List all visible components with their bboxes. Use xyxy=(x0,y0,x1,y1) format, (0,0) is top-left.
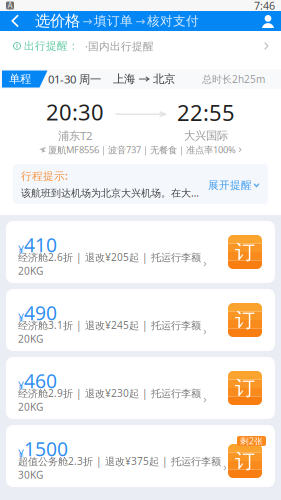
button[interactable]: ¥ xyxy=(6,425,275,487)
staticText: 核对支付 xyxy=(147,13,199,29)
staticText: 01-30 周一 xyxy=(48,71,101,87)
staticText: ¥ xyxy=(18,310,24,324)
staticText: 出行提醒： xyxy=(21,39,79,53)
staticText: 490 xyxy=(24,300,57,326)
staticText: → xyxy=(135,14,145,28)
staticText: 410 xyxy=(24,232,57,258)
staticText: 单程 xyxy=(9,72,31,86)
button[interactable]: ¥ xyxy=(6,357,275,419)
button[interactable]: 出行提醒： xyxy=(0,31,281,69)
staticText: 22:55 xyxy=(177,97,235,127)
staticText: 1500 xyxy=(24,436,68,462)
staticText: 经济舱2.9折 | 退改¥230起 | 托运行李额20KG xyxy=(18,386,201,414)
staticText: 浦东T2 xyxy=(58,128,92,143)
staticText: 上海 xyxy=(113,72,135,86)
button[interactable]: 厦航MF8556｜波音737｜无餐食｜准点率100% xyxy=(39,143,242,156)
staticText: 总时长2h25m xyxy=(202,72,265,86)
staticText: 7:46 xyxy=(254,0,275,13)
staticText: 选价格 xyxy=(35,11,80,31)
staticText: A xyxy=(7,0,12,11)
staticText: 填订单 xyxy=(94,13,133,29)
button[interactable]: ¥ xyxy=(6,289,275,351)
staticText: 460 xyxy=(24,368,57,394)
staticText: 订 xyxy=(235,448,255,474)
staticText: 展开提醒 xyxy=(208,178,252,192)
staticText: ·国内出行提醒 xyxy=(79,39,154,53)
button[interactable]: 行程提示: xyxy=(13,164,268,204)
staticText: 超值公务舱2.3折 | 退改¥375起 | 托运行李额30KG xyxy=(18,454,221,482)
staticText: 经济舱2.6折 | 退改¥205起 | 托运行李额20KG xyxy=(18,250,201,278)
staticText: ¥ xyxy=(18,242,24,256)
staticText: 北京 xyxy=(153,72,175,86)
staticText: 订 xyxy=(235,307,255,333)
staticText: 剩2张 xyxy=(240,435,263,447)
staticText: 该航班到达机场为北京大兴机场。在大… xyxy=(21,186,199,200)
staticText: 经济舱3.1折 | 退改¥245起 | 托运行李额20KG xyxy=(18,318,201,346)
staticText: ¥ xyxy=(18,378,24,392)
button[interactable]: Back xyxy=(0,11,30,31)
button[interactable]: ¥ xyxy=(6,221,275,283)
staticText: 厦航MF8556｜波音737｜无餐食｜准点率100% xyxy=(48,143,236,156)
staticText: 订 xyxy=(235,375,255,401)
staticText: → xyxy=(82,14,92,28)
staticText: 大兴国际 xyxy=(184,128,228,143)
staticText: ¥ xyxy=(18,446,24,460)
button[interactable]: Account xyxy=(261,14,275,28)
staticText: 行程提示: xyxy=(21,168,68,183)
staticText: 20:30 xyxy=(46,97,104,127)
staticText: 订 xyxy=(235,239,255,265)
